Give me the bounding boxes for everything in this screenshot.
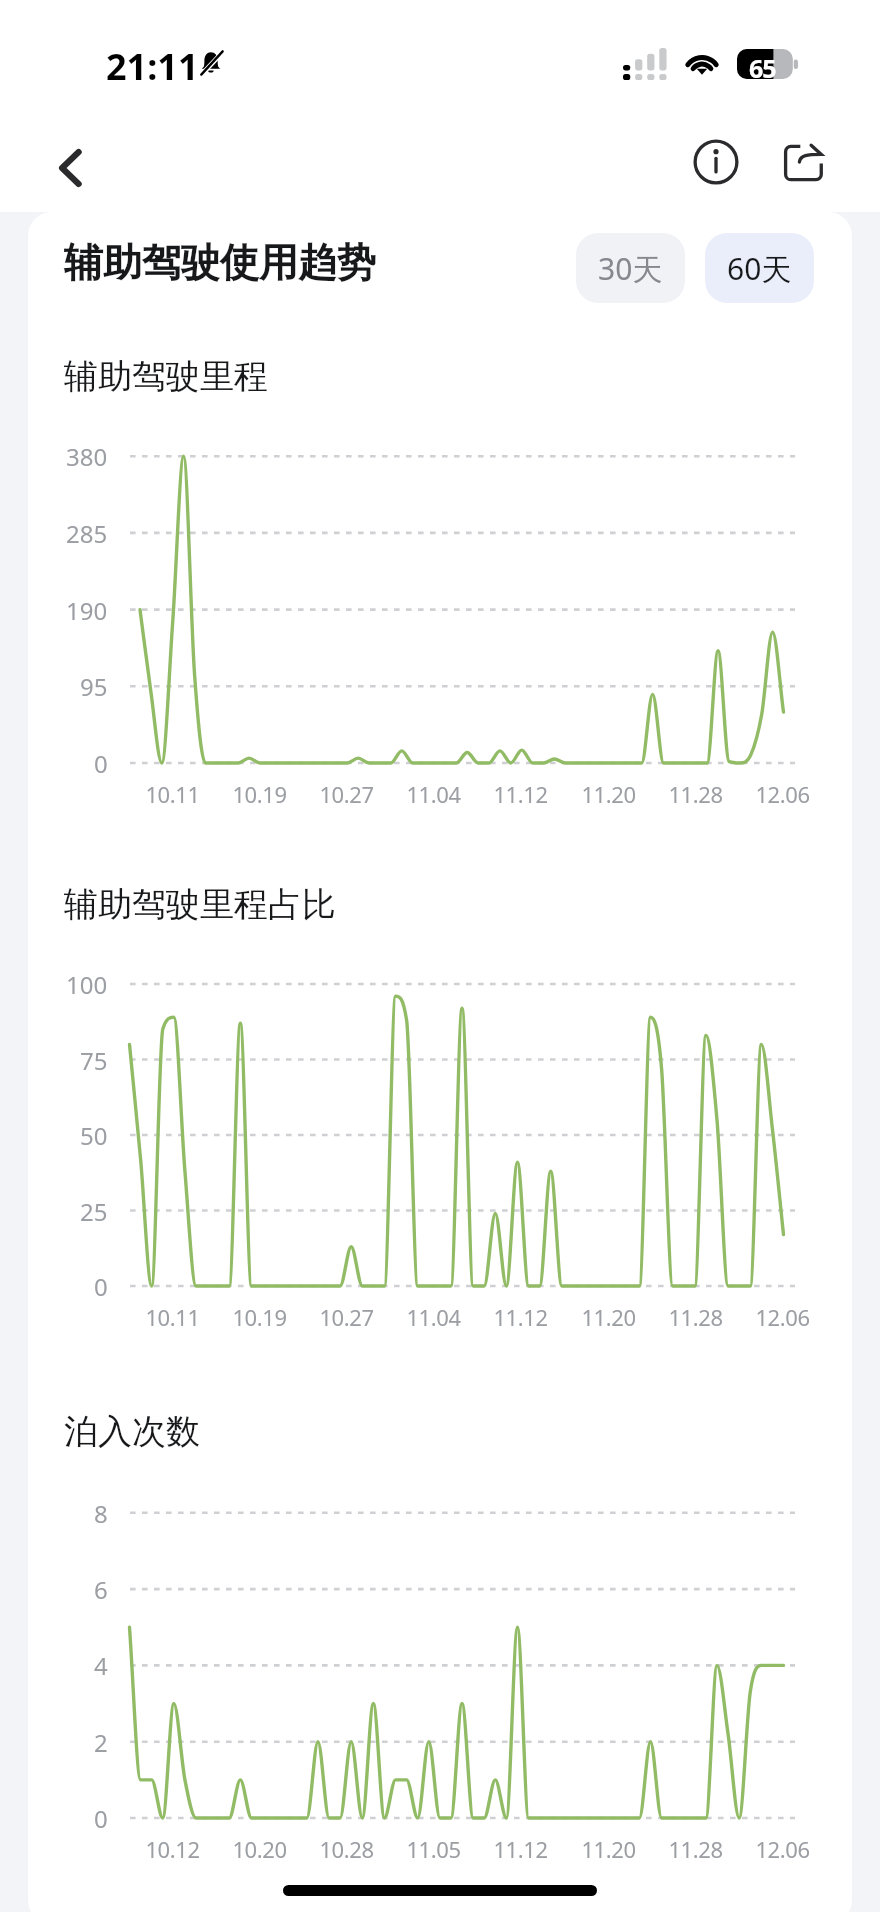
staticText: 10.19 [232, 1302, 287, 1332]
staticText: 10.19 [232, 779, 287, 809]
staticText: 60天 [727, 248, 792, 289]
staticText: 65 [749, 51, 776, 81]
staticText: 10.27 [319, 779, 374, 809]
staticText: 12.06 [755, 1834, 810, 1864]
staticText: 11.12 [493, 1302, 548, 1332]
staticText: 0 [94, 1270, 108, 1303]
staticText: 75 [80, 1044, 108, 1077]
staticText: 11.20 [581, 1834, 636, 1864]
staticText: 0 [94, 747, 108, 780]
staticText: 10.12 [145, 1834, 200, 1864]
staticText: 11.12 [493, 1834, 548, 1864]
staticText: 4 [94, 1649, 108, 1682]
staticText: 11.28 [668, 779, 723, 809]
staticText: 11.04 [406, 779, 461, 809]
staticText: 2 [94, 1726, 108, 1759]
button[interactable]: Share [772, 130, 836, 194]
staticText: 11.04 [406, 1302, 461, 1332]
staticText: 辅助驾驶里程 [64, 355, 268, 398]
staticText: 辅助驾驶里程占比 [64, 883, 336, 926]
staticText: 10.11 [145, 779, 200, 809]
staticText: 11.28 [668, 1302, 723, 1332]
button[interactable]: Info [684, 130, 748, 194]
staticText: 11.20 [581, 779, 636, 809]
staticText: 10.27 [319, 1302, 374, 1332]
staticText: 190 [66, 594, 108, 627]
staticText: 11.20 [581, 1302, 636, 1332]
staticText: 95 [80, 670, 108, 703]
staticText: 380 [66, 440, 108, 473]
button[interactable]: Back [38, 136, 102, 200]
button[interactable]: 30天 [576, 233, 685, 303]
staticText: 50 [80, 1119, 108, 1152]
staticText: 8 [94, 1497, 108, 1530]
staticText: 10.28 [319, 1834, 374, 1864]
staticText: 0 [94, 1802, 108, 1835]
staticText: 21:11 [106, 42, 199, 91]
staticText: 10.20 [232, 1834, 287, 1864]
staticText: 100 [66, 968, 108, 1001]
staticText: 25 [80, 1195, 108, 1228]
button[interactable]: 60天 [705, 233, 814, 303]
staticText: 11.28 [668, 1834, 723, 1864]
staticText: 285 [66, 517, 108, 550]
staticText: 10.11 [145, 1302, 200, 1332]
staticText: 11.05 [406, 1834, 461, 1864]
staticText: 30天 [598, 248, 663, 289]
staticText: 12.06 [755, 1302, 810, 1332]
staticText: 辅助驾驶使用趋势 [64, 238, 376, 287]
staticText: 12.06 [755, 779, 810, 809]
staticText: 6 [94, 1573, 108, 1606]
staticText: 11.12 [493, 779, 548, 809]
staticText: 泊入次数 [64, 1410, 200, 1453]
